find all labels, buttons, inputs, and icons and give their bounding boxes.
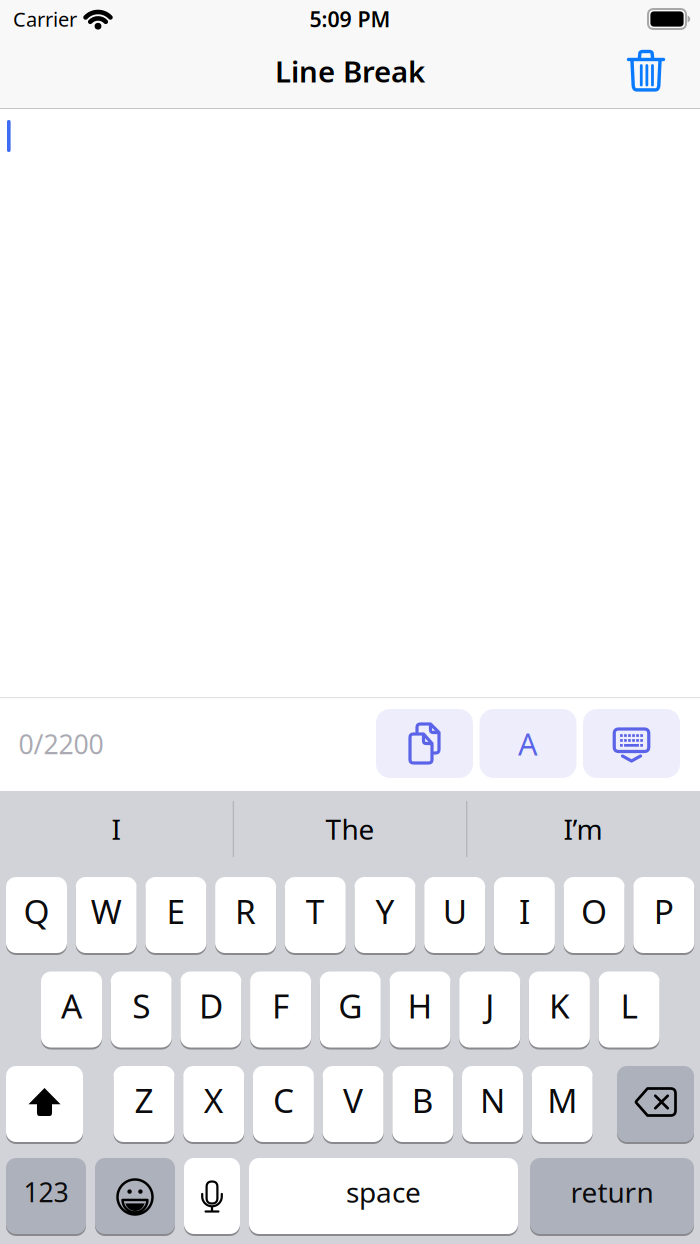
staticText: I: [519, 889, 530, 933]
button[interactable]: Emoji: [95, 1158, 175, 1234]
staticText: D: [199, 983, 223, 1028]
button[interactable]: J: [459, 971, 520, 1047]
staticText: T: [306, 889, 325, 933]
staticText: W: [91, 889, 122, 933]
button[interactable]: B: [392, 1066, 453, 1142]
staticText: 0/2200: [18, 726, 103, 762]
button[interactable]: Q: [6, 877, 67, 953]
button[interactable]: Copy text: [376, 709, 473, 778]
button[interactable]: space: [249, 1158, 518, 1234]
button[interactable]: T: [285, 877, 346, 953]
staticText: I’m: [563, 810, 602, 848]
staticText: A: [518, 723, 538, 764]
button[interactable]: A: [41, 971, 102, 1047]
staticText: S: [132, 983, 150, 1028]
staticText: 123: [23, 1174, 68, 1210]
staticText: J: [485, 983, 494, 1028]
staticText: O: [581, 889, 607, 933]
staticText: L: [621, 983, 638, 1028]
button[interactable]: Dictate: [184, 1158, 240, 1234]
staticText: The: [325, 810, 374, 848]
button[interactable]: G: [320, 971, 381, 1047]
button[interactable]: Z: [113, 1066, 174, 1142]
button[interactable]: N: [462, 1066, 523, 1142]
button[interactable]: U: [424, 877, 485, 953]
staticText: V: [343, 1078, 363, 1122]
button[interactable]: D: [180, 971, 241, 1047]
button[interactable]: R: [215, 877, 276, 953]
button[interactable]: C: [253, 1066, 314, 1142]
staticText: Y: [375, 889, 394, 933]
button[interactable]: Text style: [479, 709, 576, 778]
staticText: F: [272, 983, 289, 1028]
staticText: R: [235, 889, 256, 933]
button[interactable]: F: [250, 971, 311, 1047]
staticText: Carrier: [13, 6, 77, 32]
button[interactable]: I’m: [468, 793, 698, 865]
button[interactable]: W: [76, 877, 137, 953]
button[interactable]: Shift: [6, 1066, 83, 1142]
staticText: K: [549, 983, 570, 1028]
button[interactable]: X: [183, 1066, 244, 1142]
button[interactable]: E: [145, 877, 206, 953]
staticText: X: [204, 1078, 224, 1122]
button[interactable]: L: [599, 971, 660, 1047]
button[interactable]: 123: [6, 1158, 86, 1234]
button[interactable]: I: [494, 877, 555, 953]
staticText: H: [407, 983, 432, 1028]
staticText: Z: [134, 1078, 153, 1122]
button[interactable]: K: [529, 971, 590, 1047]
button[interactable]: Delete: [617, 1066, 694, 1142]
staticText: space: [346, 1173, 421, 1211]
button[interactable]: Y: [354, 877, 415, 953]
button[interactable]: return: [530, 1158, 694, 1234]
staticText: P: [654, 889, 674, 933]
staticText: E: [166, 889, 185, 933]
staticText: M: [547, 1078, 577, 1122]
staticText: U: [443, 889, 467, 933]
staticText: C: [273, 1078, 294, 1122]
button[interactable]: V: [323, 1066, 384, 1142]
button[interactable]: Dismiss keyboard: [583, 709, 680, 778]
staticText: return: [570, 1173, 653, 1211]
staticText: B: [412, 1078, 434, 1122]
staticText: Q: [23, 889, 49, 933]
staticText: Line Break: [275, 51, 425, 90]
button[interactable]: H: [389, 971, 450, 1047]
button[interactable]: M: [532, 1066, 593, 1142]
staticText: A: [61, 983, 82, 1028]
button[interactable]: S: [111, 971, 172, 1047]
staticText: G: [338, 983, 362, 1028]
staticText: N: [480, 1078, 505, 1122]
staticText: I: [111, 810, 120, 848]
button[interactable]: The: [235, 793, 465, 865]
staticText: 5:09 PM: [309, 5, 390, 33]
button[interactable]: P: [633, 877, 694, 953]
button[interactable]: I: [1, 793, 231, 865]
button[interactable]: O: [564, 877, 625, 953]
button[interactable]: Delete text: [628, 51, 663, 90]
